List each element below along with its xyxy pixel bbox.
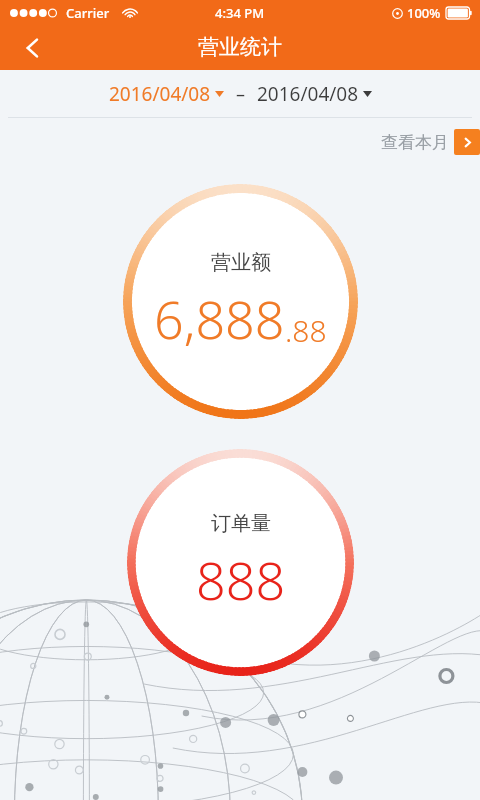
staticText: 营业统计 [198, 34, 282, 60]
staticText: 2016/04/08 [257, 81, 359, 107]
button[interactable]: 查看本月 [381, 129, 480, 155]
staticText: 6,888 [154, 283, 285, 354]
staticText: 2016/04/08 [109, 81, 211, 107]
staticText: 订单量 [211, 511, 271, 536]
staticText: 4:34 PM [215, 4, 265, 22]
button[interactable]: 2016/04/08 [107, 77, 226, 111]
staticText: Carrier [66, 4, 110, 22]
button[interactable]: 2016/04/08 [255, 77, 374, 111]
button[interactable]: Back [6, 26, 60, 70]
button[interactable]: 订单量 [127, 449, 354, 676]
staticText: .88 [285, 310, 327, 351]
staticText: – [236, 82, 245, 107]
staticText: 营业额 [211, 250, 271, 275]
button[interactable]: 营业额 [123, 184, 358, 419]
staticText: 100% [407, 4, 441, 22]
staticText: 888 [196, 544, 286, 615]
staticText: 查看本月 [381, 132, 449, 153]
